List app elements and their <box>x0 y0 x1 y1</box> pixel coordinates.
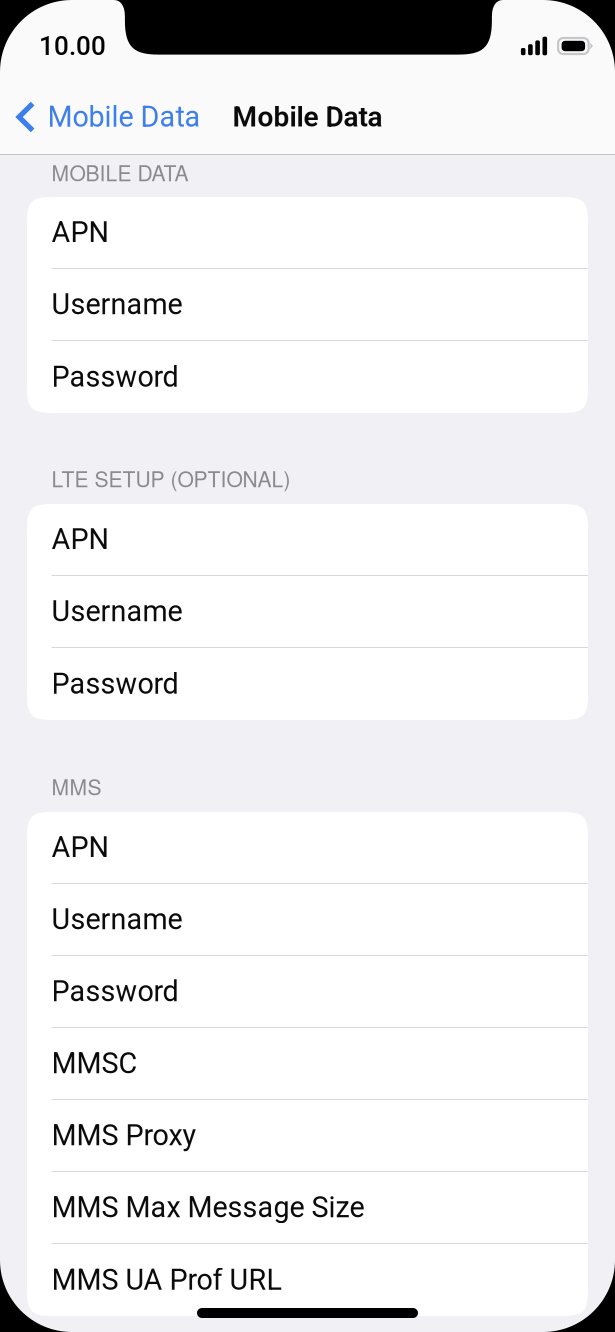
staticText: Password <box>51 975 178 1008</box>
staticText: APN <box>51 523 108 556</box>
staticText: APN <box>51 216 108 249</box>
staticText: Mobile Data <box>232 101 382 133</box>
staticText: MMS UA Prof URL <box>51 1263 281 1297</box>
staticText: MMSC <box>51 1047 137 1080</box>
staticText: MMS Proxy <box>51 1119 196 1152</box>
staticText: MOBILE DATA <box>51 157 188 187</box>
button[interactable]: Password <box>27 648 588 720</box>
staticText: Password <box>51 360 178 394</box>
button[interactable]: Username <box>27 884 588 956</box>
staticText: MMS Max Message Size <box>51 1191 364 1224</box>
staticText: APN <box>51 831 108 864</box>
button[interactable]: Password <box>27 341 588 413</box>
staticText: Mobile Data <box>48 100 201 134</box>
button[interactable]: Username <box>27 576 588 648</box>
staticText: Username <box>51 903 182 936</box>
button[interactable]: APN <box>27 504 588 576</box>
staticText: LTE SETUP (OPTIONAL) <box>51 463 290 493</box>
button[interactable]: MMS UA Prof URL <box>27 1244 588 1316</box>
button[interactable]: MMSC <box>27 1028 588 1100</box>
button[interactable]: Username <box>27 269 588 341</box>
staticText: Username <box>51 288 182 321</box>
button[interactable]: APN <box>27 812 588 884</box>
button[interactable]: MMS Max Message Size <box>27 1172 588 1244</box>
button[interactable]: APN <box>27 197 588 269</box>
button[interactable]: Password <box>27 956 588 1028</box>
button[interactable]: MMS Proxy <box>27 1100 588 1172</box>
staticText: Username <box>51 595 182 628</box>
staticText: MMS <box>51 771 101 801</box>
button[interactable]: Mobile Data <box>0 94 201 140</box>
staticText: Password <box>51 667 178 701</box>
staticText: 10.00 <box>39 31 106 61</box>
